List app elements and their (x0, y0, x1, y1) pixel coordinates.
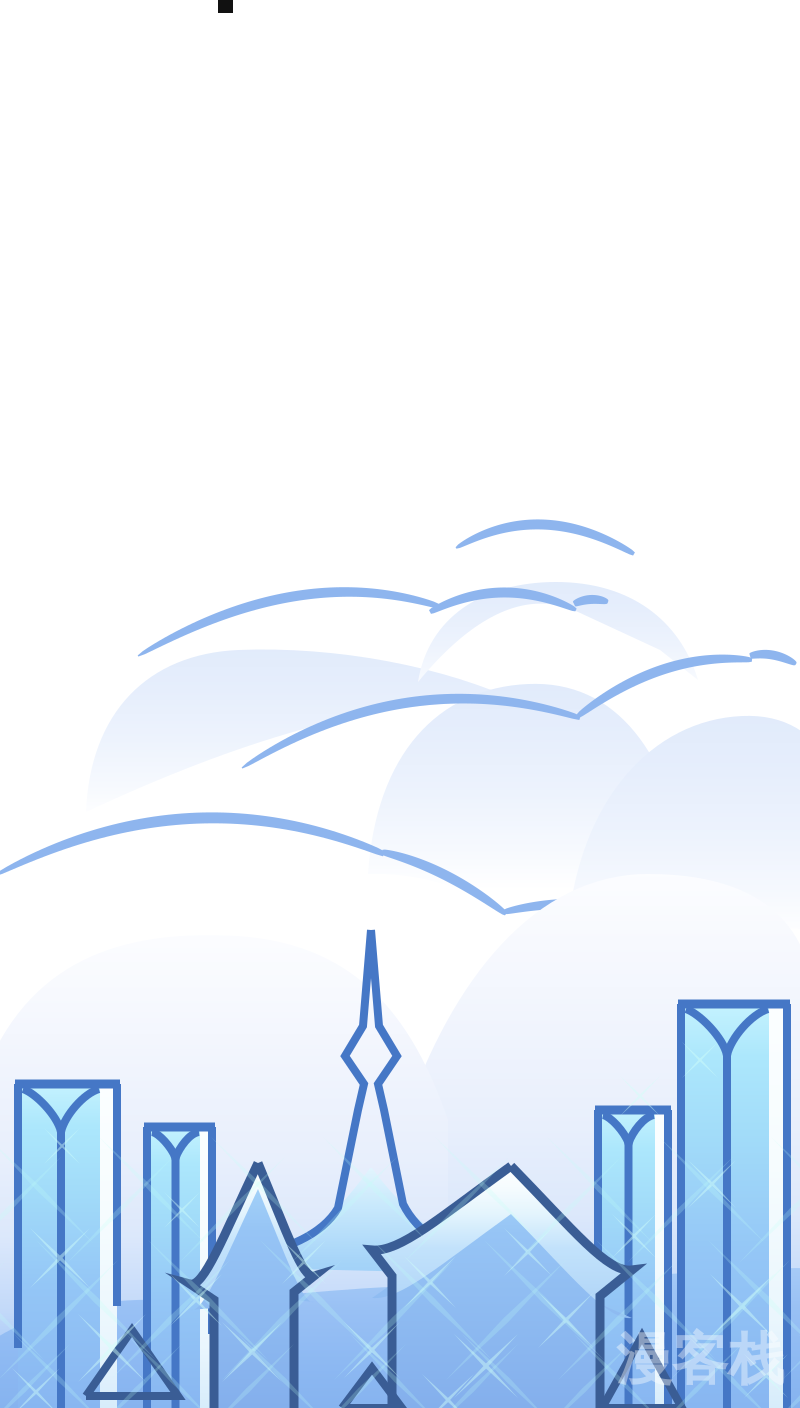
staticText: 漫客栈 (616, 1325, 784, 1394)
